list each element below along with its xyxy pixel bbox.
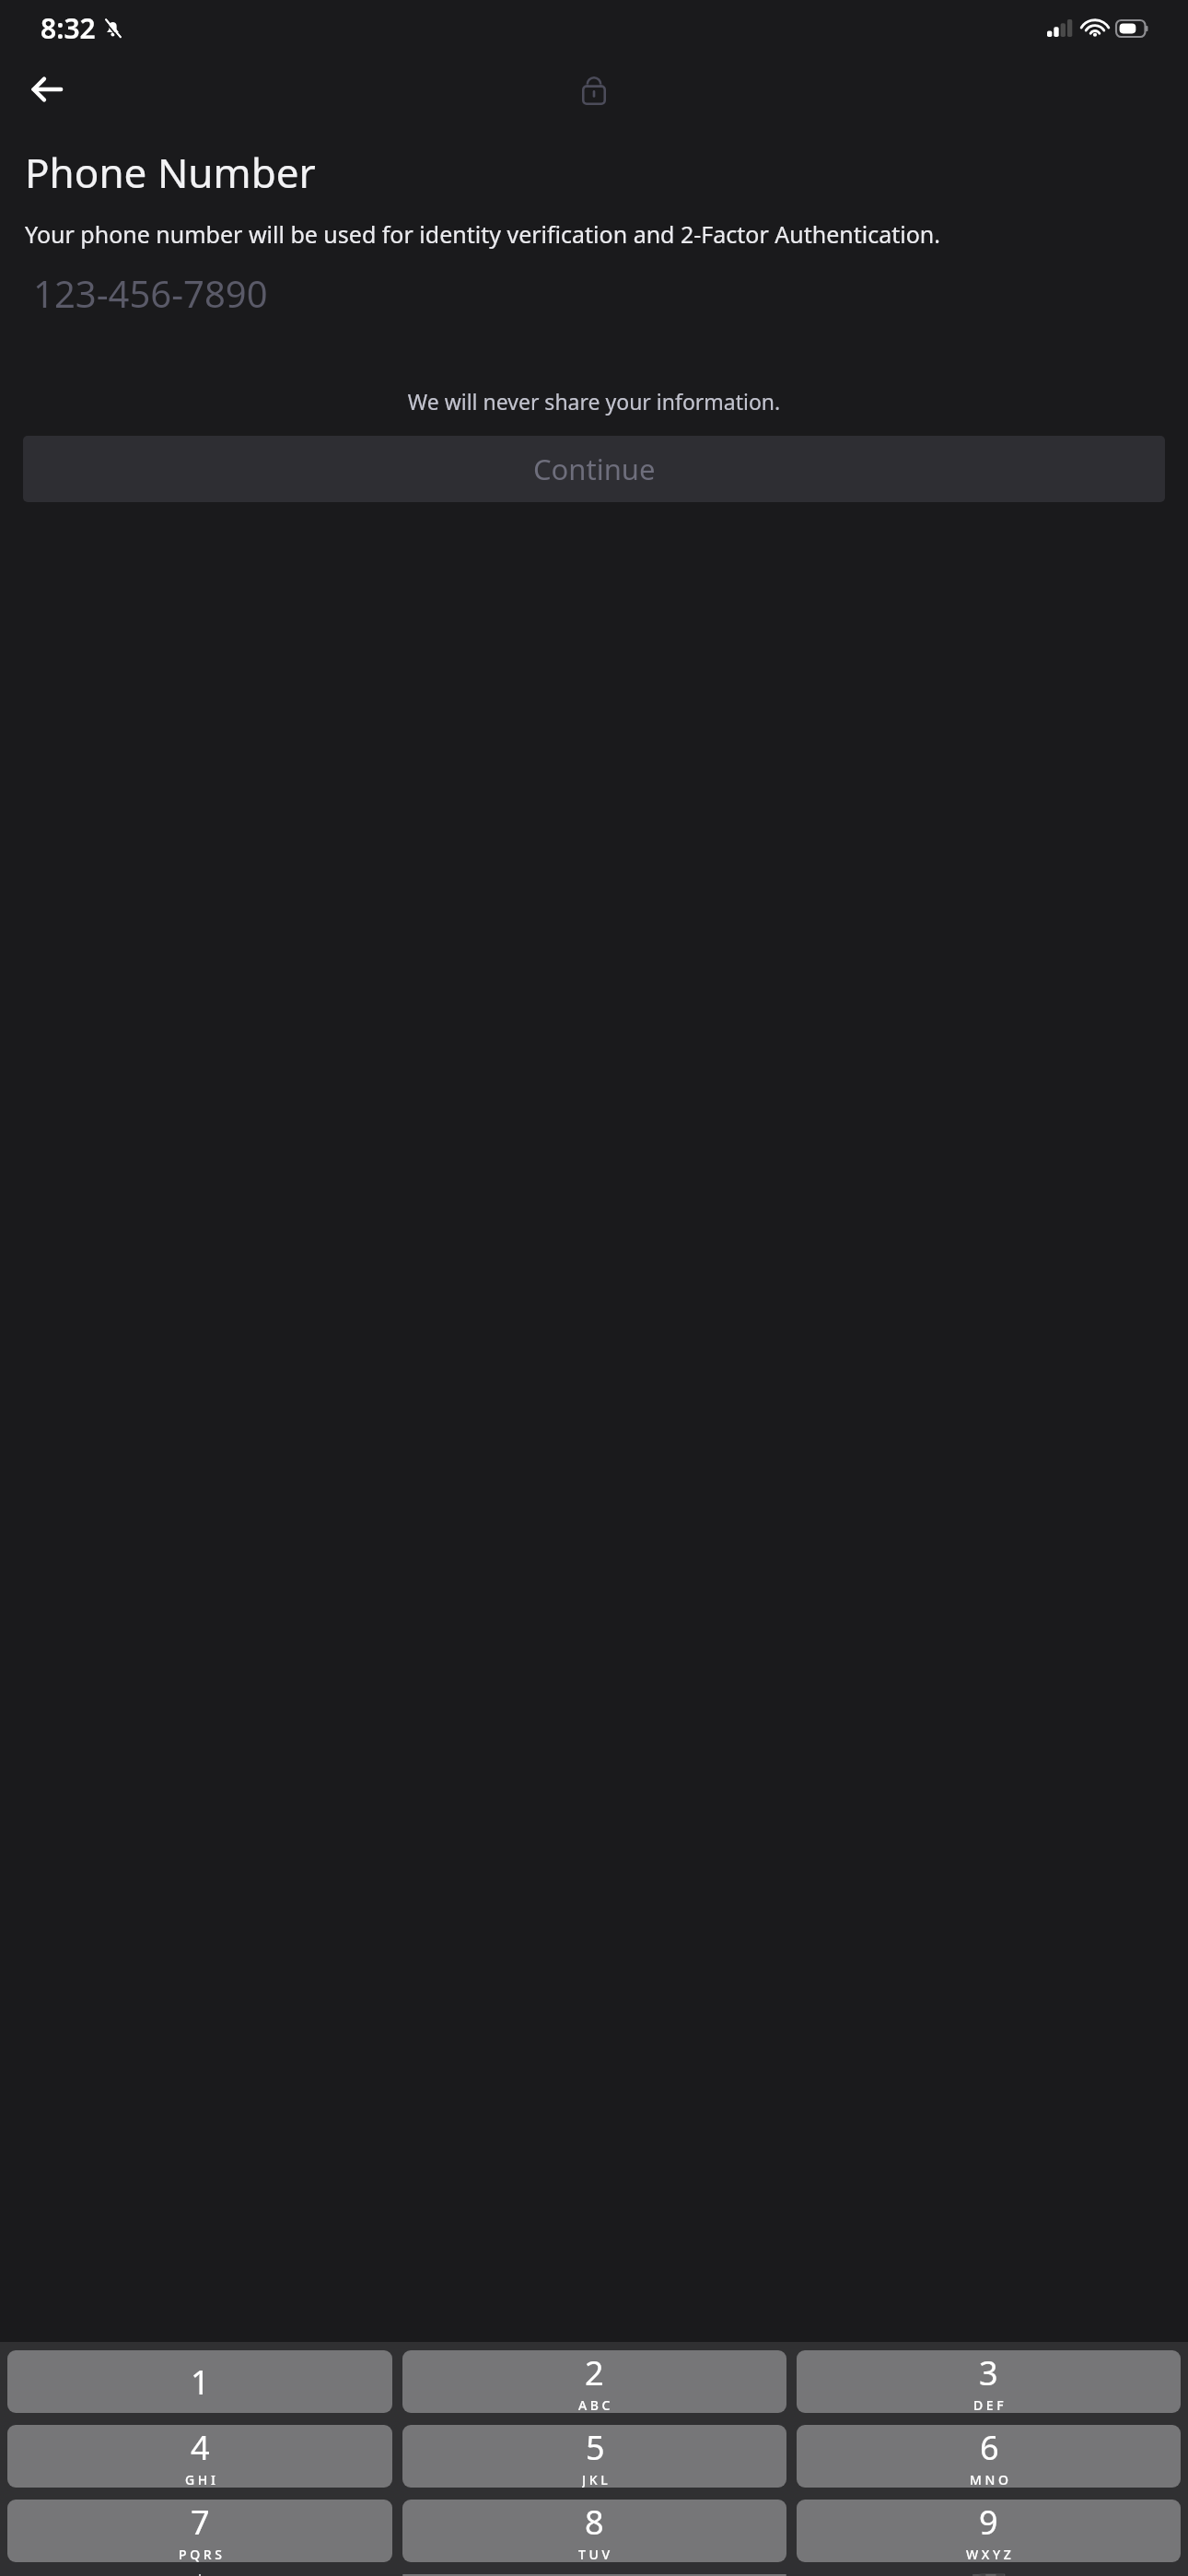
staticText: 8:32	[41, 9, 96, 47]
staticText: 7	[191, 2500, 210, 2545]
button[interactable]: 3	[797, 2350, 1181, 2413]
staticText: J K L	[582, 2471, 608, 2488]
button[interactable]: 8	[402, 2500, 786, 2562]
staticText: A B C	[578, 2396, 611, 2413]
button[interactable]: Back	[24, 66, 70, 112]
button[interactable]: 4	[7, 2425, 392, 2488]
staticText: We will never share your information.	[0, 387, 1188, 416]
staticText: 123-456-7890	[33, 268, 268, 318]
button[interactable]: 7	[7, 2500, 392, 2562]
button[interactable]: Continue	[23, 436, 1165, 502]
staticText: Continue	[533, 450, 656, 488]
staticText: D E F	[973, 2396, 1004, 2413]
button[interactable]: Backspace	[797, 2574, 1181, 2576]
staticText: 3	[979, 2350, 998, 2395]
staticText: 6	[980, 2425, 999, 2470]
staticText: 8	[585, 2500, 604, 2545]
staticText: G H I	[185, 2471, 215, 2488]
staticText: Phone Number	[25, 145, 316, 200]
button[interactable]: 1	[7, 2350, 392, 2413]
button[interactable]: 2	[402, 2350, 786, 2413]
button[interactable]: 0	[402, 2574, 786, 2576]
staticText: T U V	[578, 2546, 611, 2562]
staticText: W X Y Z	[966, 2546, 1011, 2562]
staticText: M N O	[970, 2471, 1008, 2488]
staticText: 5	[586, 2425, 605, 2470]
staticText: 2	[585, 2350, 604, 2395]
staticText: 0	[585, 2574, 604, 2576]
staticText: Your phone number will be used for ident…	[25, 218, 941, 250]
button[interactable]: 9	[797, 2500, 1181, 2562]
button[interactable]: 5	[402, 2425, 786, 2488]
staticText: P Q R S	[179, 2546, 222, 2562]
button[interactable]: 6	[797, 2425, 1181, 2488]
staticText: 1	[191, 2359, 210, 2405]
button[interactable]: Period	[7, 2574, 392, 2576]
staticText: 4	[191, 2425, 210, 2470]
staticText: 9	[979, 2500, 998, 2545]
